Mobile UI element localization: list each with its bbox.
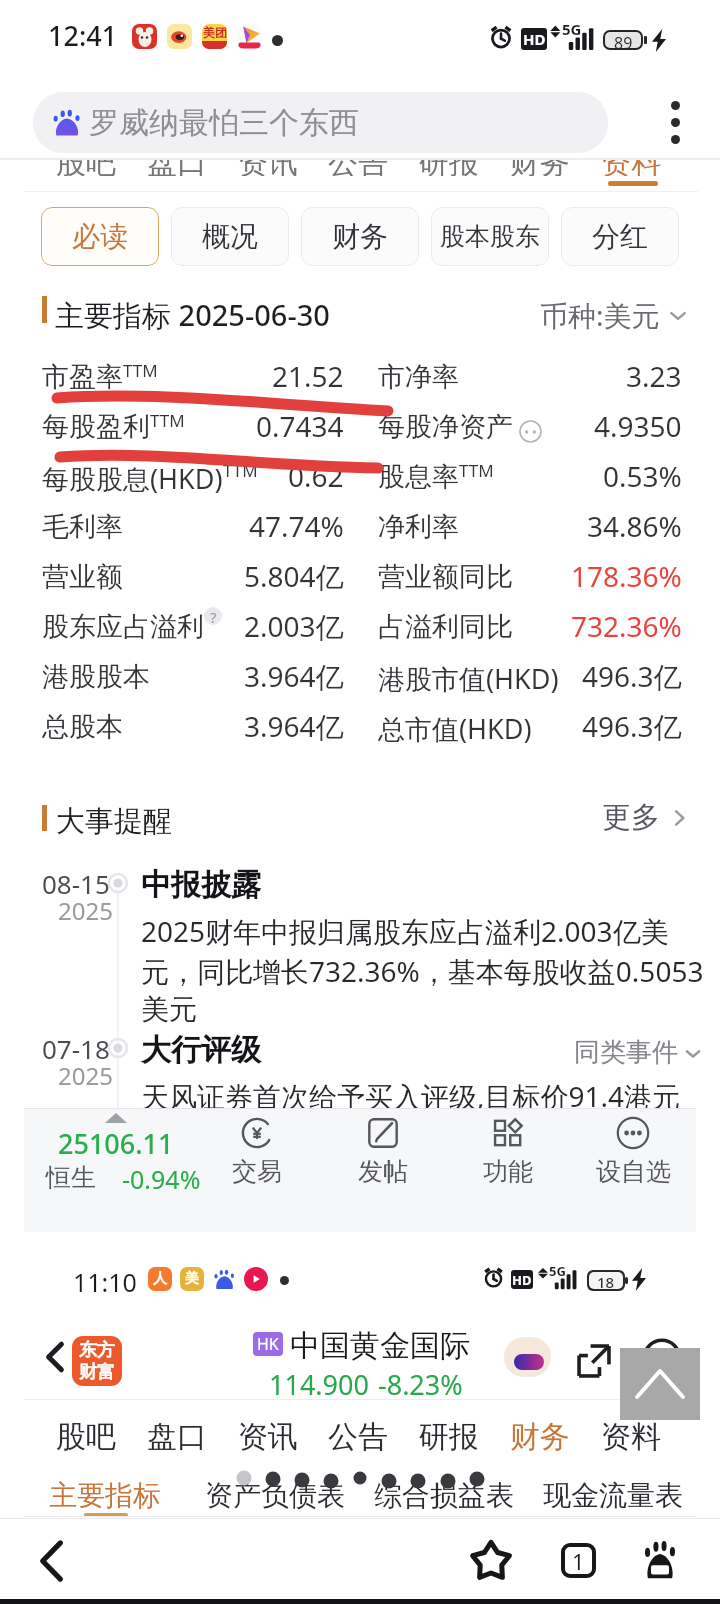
button[interactable]: 同类事件 <box>574 1036 704 1069</box>
staticText: 同类事件 <box>574 1036 678 1069</box>
button[interactable]: 公告 <box>326 1412 390 1462</box>
staticText: 主要指标 <box>49 1478 161 1513</box>
staticText: 必读 <box>72 219 128 254</box>
button[interactable]: 每股股息(HKD) <box>0 451 720 501</box>
button[interactable]: 研报 <box>417 1412 481 1462</box>
button[interactable]: 资讯 <box>236 1412 300 1462</box>
button[interactable]: 必读 <box>41 207 159 266</box>
staticText: 概况 <box>202 219 258 254</box>
staticText: 更多 <box>602 799 660 836</box>
button[interactable]: 资料 <box>599 160 663 176</box>
button[interactable]: 设自选 <box>569 1114 697 1187</box>
staticText: 人 <box>153 1270 167 1288</box>
button[interactable]: Back <box>16 1526 86 1596</box>
staticText: 07-18 <box>42 1031 110 1066</box>
button[interactable]: 主要指标 <box>25 1474 185 1516</box>
button[interactable]: Tabs <box>543 1525 613 1595</box>
staticText: 占溢利同比 <box>378 610 513 644</box>
button[interactable]: Bookmark <box>456 1525 526 1595</box>
button[interactable]: 概况 <box>171 207 289 266</box>
button[interactable]: 股吧 <box>54 160 118 176</box>
button[interactable]: 分红 <box>561 207 679 266</box>
button[interactable]: More options <box>655 92 695 153</box>
staticText: 毛利率 <box>42 510 123 544</box>
button[interactable]: 财务 <box>301 207 419 266</box>
staticText: 总股本 <box>42 710 123 744</box>
button[interactable]: 币种:美元 <box>540 296 690 334</box>
staticText: 盘口 <box>147 160 207 176</box>
staticText: 研报 <box>419 160 479 176</box>
staticText: 12:41 <box>48 17 118 54</box>
staticText: HD <box>512 1271 532 1289</box>
button[interactable]: 罗威纳最怕三个东西 <box>33 92 608 153</box>
staticText: 盘口 <box>147 1418 207 1456</box>
button[interactable]: Search <box>638 1334 690 1386</box>
staticText: 分红 <box>592 219 648 254</box>
staticText: 47.74% <box>249 507 344 545</box>
staticText: TTM <box>223 459 258 482</box>
staticText: 5G <box>549 1262 566 1280</box>
button[interactable]: 功能 <box>444 1114 572 1187</box>
button[interactable]: 财务 <box>508 160 572 176</box>
staticText: 公告 <box>328 160 388 176</box>
button[interactable]: 综合损益表 <box>364 1474 524 1516</box>
button[interactable]: 股吧 <box>54 1412 118 1462</box>
staticText: 市净率 <box>378 360 459 394</box>
staticText: 3.964亿 <box>244 657 344 695</box>
button[interactable]: Share <box>573 1340 615 1382</box>
staticText: 21.52 <box>272 357 344 395</box>
button[interactable]: Scroll to top <box>620 1348 700 1420</box>
staticText: 34.86% <box>587 507 682 545</box>
staticText: ? <box>210 607 217 625</box>
staticText: -0.94% <box>122 1162 201 1196</box>
button[interactable]: 股东应占溢利 <box>0 601 720 651</box>
staticText: 大事提醒 <box>56 803 172 840</box>
staticText: 89 <box>614 32 633 48</box>
staticText: TTM <box>150 409 185 432</box>
staticText: 11:10 <box>73 1265 137 1299</box>
staticText: 5G <box>562 19 582 39</box>
staticText: 财务 <box>510 1418 570 1456</box>
button[interactable]: 每股盈利 <box>0 401 720 451</box>
staticText: 5.804亿 <box>244 557 344 595</box>
staticText: 东方 财富 <box>79 1339 115 1383</box>
button[interactable]: 发帖 <box>319 1114 447 1187</box>
button[interactable]: 公告 <box>326 160 390 176</box>
button[interactable]: 研报 <box>417 160 481 176</box>
staticText: 732.36% <box>571 607 682 645</box>
button[interactable]: 毛利率 <box>0 501 720 551</box>
staticText: 中报披露 <box>141 866 261 904</box>
staticText: 港股市值(HKD) <box>378 660 559 697</box>
button[interactable]: 港股股本 <box>0 651 720 701</box>
staticText: 资料 <box>601 1418 661 1456</box>
button[interactable]: 财务 <box>508 1412 572 1462</box>
button[interactable]: 总股本 <box>0 701 720 751</box>
button[interactable]: 资产负债表 <box>195 1474 355 1516</box>
button[interactable]: Back <box>36 1338 74 1376</box>
button[interactable]: Baidu home <box>625 1525 695 1595</box>
staticText: 天风证券首次给予买入评级,目标价91.4港元 <box>141 1077 681 1115</box>
button[interactable]: 股本股东 <box>431 207 549 266</box>
button[interactable]: 营业额 <box>0 551 720 601</box>
staticText: 币种:美元 <box>540 296 660 334</box>
button[interactable]: 盘口 <box>145 160 209 176</box>
staticText: 2025 <box>58 894 113 927</box>
button[interactable]: 交易 <box>193 1114 321 1187</box>
button[interactable]: 市盈率 <box>0 351 720 401</box>
staticText: -8.23% <box>378 1366 463 1403</box>
staticText: 25106.11 <box>58 1125 174 1162</box>
staticText: 股吧 <box>56 160 116 176</box>
button[interactable]: 现金流量表 <box>533 1474 693 1516</box>
button[interactable]: 资讯 <box>236 160 300 176</box>
button[interactable]: 东方 财富 <box>72 1336 122 1386</box>
button[interactable]: 盘口 <box>145 1412 209 1462</box>
staticText: 每股股息(HKD) <box>42 460 223 497</box>
staticText: 营业额 <box>42 560 123 594</box>
staticText: 净利率 <box>378 510 459 544</box>
staticText: 08-15 <box>42 866 110 901</box>
staticText: 2025 <box>58 1059 113 1092</box>
button[interactable]: 资料 <box>599 1412 663 1462</box>
staticText: 资讯 <box>238 1418 298 1456</box>
button[interactable]: 更多 <box>602 799 694 836</box>
staticText: 每股盈利 <box>42 410 150 444</box>
